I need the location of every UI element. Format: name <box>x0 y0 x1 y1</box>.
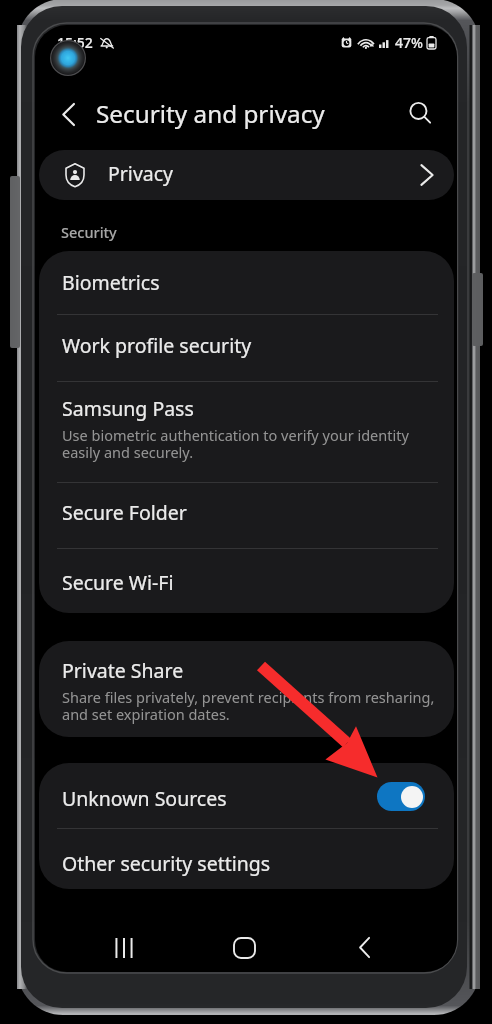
button[interactable]: Unknown Sources toggle, on <box>377 782 425 811</box>
staticText: Biometrics <box>62 269 160 296</box>
staticText: Samsung Pass <box>62 395 194 422</box>
staticText: 15:52 <box>57 33 93 52</box>
staticText: Secure Wi-Fi <box>62 569 174 596</box>
button[interactable]: Secure Folder <box>39 483 454 548</box>
button[interactable]: Private Share <box>39 641 454 737</box>
button[interactable]: Home <box>222 925 267 970</box>
button[interactable]: Navigate up <box>46 92 90 136</box>
staticText: Security <box>61 222 117 242</box>
staticText: Privacy <box>108 160 174 187</box>
staticText: Private Share <box>62 657 184 684</box>
staticText: Work profile security <box>62 332 252 359</box>
button[interactable]: Biometrics <box>39 251 454 314</box>
staticText: 47% <box>395 33 423 52</box>
staticText: Secure Folder <box>62 499 187 526</box>
button[interactable]: Back <box>342 925 387 970</box>
button[interactable]: Work profile security <box>39 315 454 381</box>
staticText: Other security settings <box>62 850 271 877</box>
staticText: Unknown Sources <box>62 785 227 812</box>
button[interactable]: Secure Wi-Fi <box>39 549 454 613</box>
button[interactable]: Other security settings <box>39 829 454 889</box>
button[interactable]: Recent apps <box>101 925 146 970</box>
button[interactable]: Samsung Pass <box>39 382 454 482</box>
staticText: Share files privately, prevent recipient… <box>62 687 443 724</box>
button[interactable]: Search <box>398 91 442 135</box>
staticText: Security and privacy <box>96 97 325 130</box>
button[interactable]: Privacy <box>39 150 454 200</box>
staticText: Use biometric authentication to verify y… <box>62 425 412 462</box>
button[interactable]: Unknown Sources <box>39 763 454 828</box>
